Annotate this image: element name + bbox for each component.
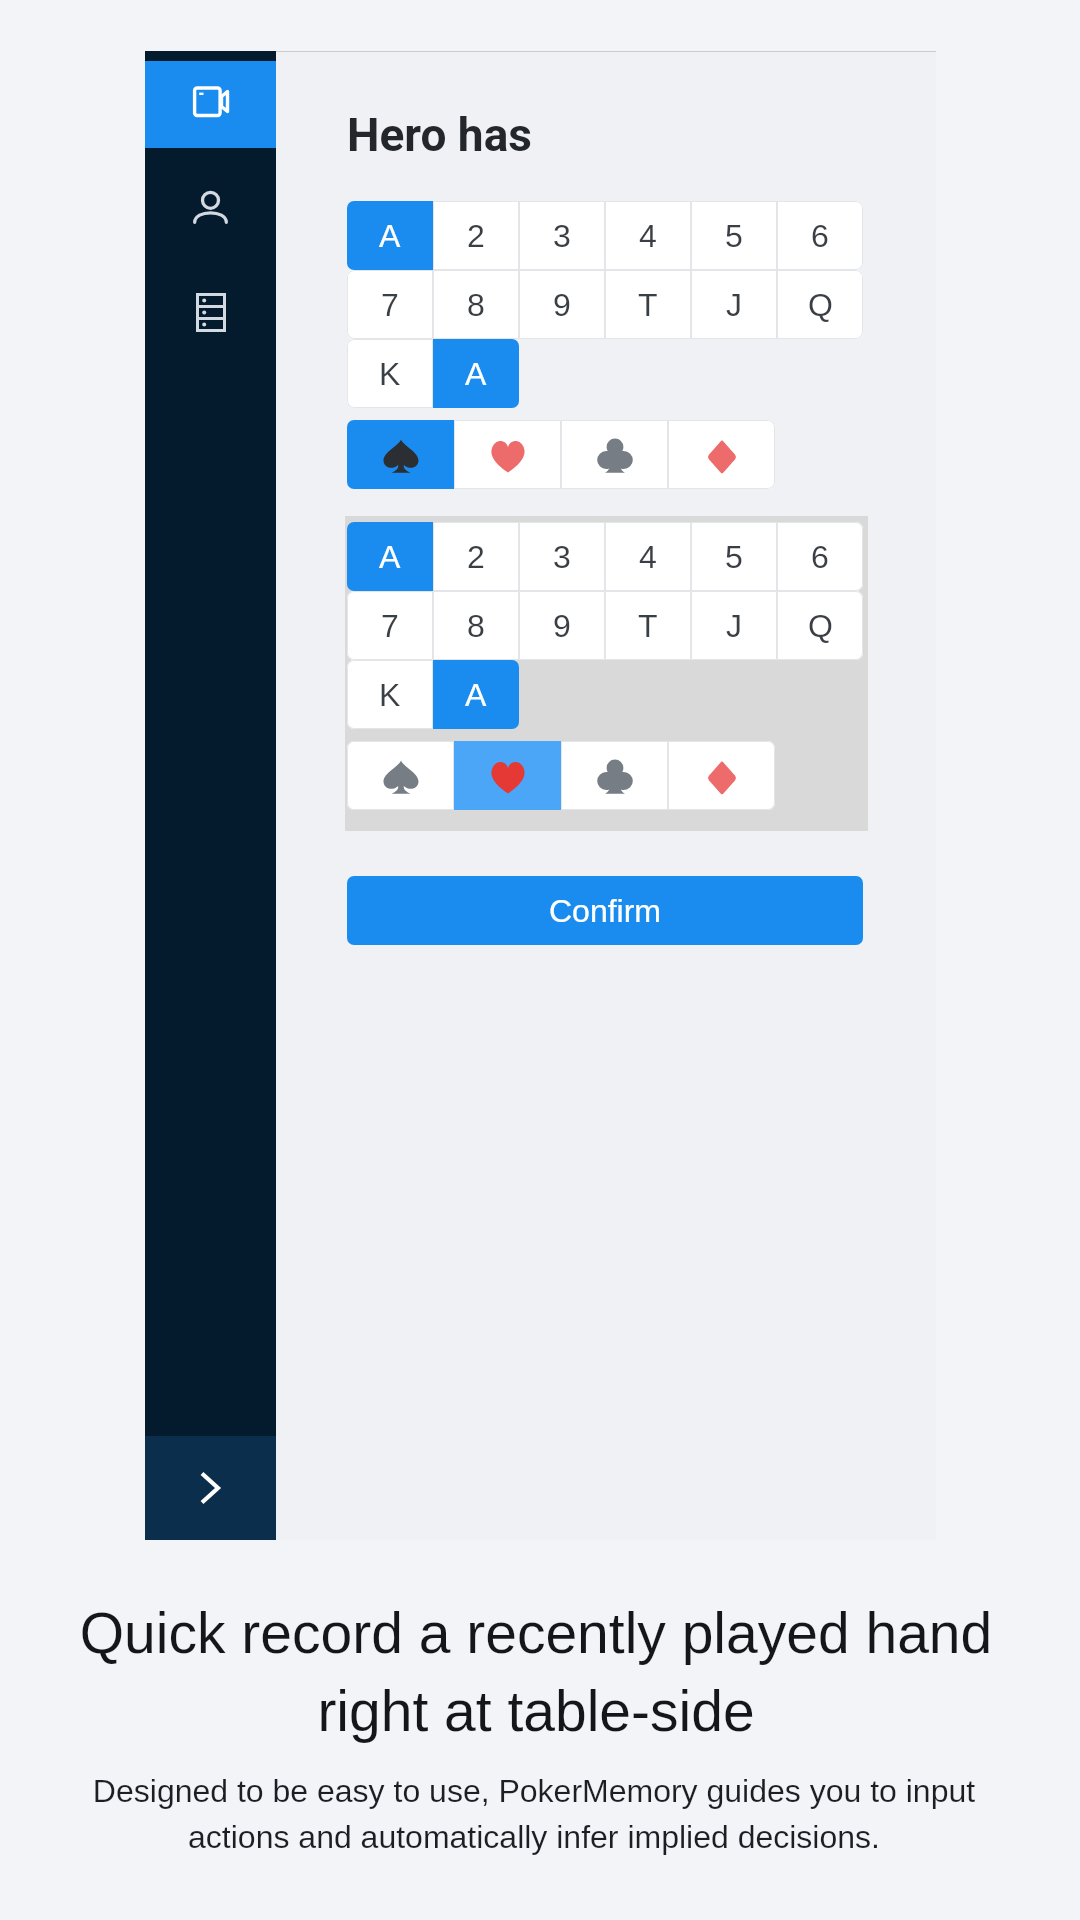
button[interactable]: Spades [347, 420, 454, 489]
staticText: 8 [467, 287, 485, 323]
staticText: J [726, 608, 742, 644]
staticText: 5 [725, 218, 743, 254]
button[interactable]: 8 [433, 270, 519, 339]
staticText: J [726, 287, 742, 323]
button[interactable]: 6 [777, 522, 863, 591]
button[interactable]: A [433, 660, 519, 729]
staticText: 6 [811, 539, 829, 575]
staticText: 2 [467, 218, 485, 254]
staticText: 7 [381, 287, 399, 323]
button[interactable]: Q [777, 591, 863, 660]
button[interactable]: 6 [777, 201, 863, 270]
button[interactable]: 4 [605, 201, 691, 270]
staticText: 3 [553, 539, 571, 575]
button[interactable]: 3 [519, 522, 605, 591]
button[interactable]: Confirm [347, 876, 863, 945]
button[interactable]: 8 [433, 591, 519, 660]
button[interactable]: Sessions [145, 261, 276, 363]
staticText: T [638, 287, 658, 323]
staticText: A [465, 677, 487, 713]
staticText: 4 [639, 218, 657, 254]
button[interactable]: J [691, 270, 777, 339]
button[interactable]: J [691, 591, 777, 660]
button[interactable]: 3 [519, 201, 605, 270]
staticText: A [379, 218, 401, 254]
staticText: A [465, 356, 487, 392]
button[interactable]: Record hand [145, 61, 276, 148]
staticText: 9 [553, 287, 571, 323]
button[interactable]: 5 [691, 522, 777, 591]
staticText: 5 [725, 539, 743, 575]
button[interactable]: 5 [691, 201, 777, 270]
button[interactable]: 9 [519, 591, 605, 660]
button[interactable]: 4 [605, 522, 691, 591]
button[interactable]: 2 [433, 522, 519, 591]
button[interactable]: Profile [145, 148, 276, 261]
staticText: 9 [553, 608, 571, 644]
staticText: 2 [467, 539, 485, 575]
button[interactable]: 7 [347, 270, 433, 339]
staticText: Q [808, 287, 833, 323]
button[interactable]: A [347, 201, 433, 270]
staticText: K [379, 677, 401, 713]
button[interactable]: 9 [519, 270, 605, 339]
staticText: T [638, 608, 658, 644]
staticText: 8 [467, 608, 485, 644]
staticText: Designed to be easy to use, PokerMemory … [69, 1773, 999, 1855]
button[interactable]: K [347, 660, 433, 729]
staticText: 3 [553, 218, 571, 254]
button[interactable]: A [433, 339, 519, 408]
button[interactable]: Expand menu [145, 1436, 276, 1540]
staticText: 7 [381, 608, 399, 644]
button[interactable]: Clubs [561, 420, 668, 489]
staticText: 6 [811, 218, 829, 254]
staticText: A [379, 539, 401, 575]
button[interactable]: Diamonds [668, 741, 775, 810]
button[interactable]: Hearts [454, 741, 561, 810]
button[interactable]: Spades [347, 741, 454, 810]
staticText: Q [808, 608, 833, 644]
button[interactable]: Clubs [561, 741, 668, 810]
button[interactable]: T [605, 270, 691, 339]
staticText: 4 [639, 539, 657, 575]
staticText: Confirm [549, 893, 662, 929]
staticText: K [379, 356, 401, 392]
button[interactable]: Q [777, 270, 863, 339]
staticText: Hero has [347, 108, 532, 162]
button[interactable]: Hearts [454, 420, 561, 489]
button[interactable]: 2 [433, 201, 519, 270]
button[interactable]: A [347, 522, 433, 591]
staticText: Quick record a recently played hand righ… [71, 1601, 1001, 1743]
button[interactable]: K [347, 339, 433, 408]
button[interactable]: 7 [347, 591, 433, 660]
button[interactable]: Diamonds [668, 420, 775, 489]
button[interactable]: T [605, 591, 691, 660]
